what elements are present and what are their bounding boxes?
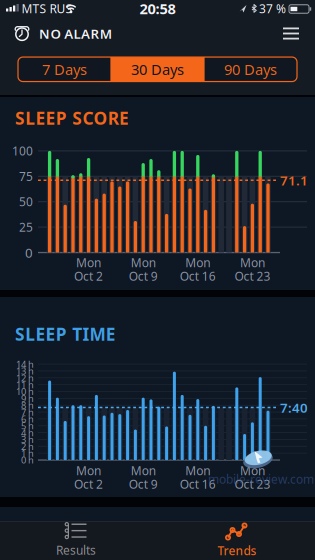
staticText: 14 h xyxy=(16,358,34,370)
staticText: NO ALARM xyxy=(39,25,112,42)
button[interactable]: 90 Days xyxy=(204,57,297,81)
staticText: 13 h xyxy=(16,365,34,377)
staticText: Oct 16 xyxy=(180,476,216,492)
staticText: 0 xyxy=(25,244,33,261)
staticText: 5 h xyxy=(21,420,34,432)
button[interactable]: 30 Days xyxy=(111,57,204,81)
staticText: 90 Days xyxy=(224,60,277,79)
staticText: 75 xyxy=(19,168,33,184)
staticText: 12 h xyxy=(16,372,34,384)
staticText: 4 h xyxy=(21,426,34,439)
staticText: Mon xyxy=(185,462,210,478)
staticText: 7 Days xyxy=(42,60,87,79)
staticText: Mon xyxy=(76,462,101,478)
staticText: Mon xyxy=(131,254,156,270)
staticText: Oct 2 xyxy=(74,476,103,492)
staticText: 10 h xyxy=(16,385,34,398)
staticText: Oct 9 xyxy=(129,476,158,492)
staticText: 20:58 xyxy=(139,0,175,18)
staticText: Oct 23 xyxy=(234,476,270,492)
staticText: Mon xyxy=(76,254,101,270)
staticText: 30 Days xyxy=(131,60,184,79)
button[interactable]: Menu xyxy=(275,19,307,47)
staticText: 8 h xyxy=(21,399,34,411)
staticText: Mon xyxy=(240,462,265,478)
staticText: Mon xyxy=(240,254,265,270)
staticText: SLEEP SCORE xyxy=(15,106,129,129)
staticText: SLEEP TIME xyxy=(15,322,116,345)
staticText: Mon xyxy=(131,462,156,478)
staticText: 0 h xyxy=(21,454,34,466)
staticText: 11 h xyxy=(16,378,34,391)
staticText: 37 % xyxy=(259,0,286,16)
staticText: 9 h xyxy=(21,392,34,405)
staticText: Trends xyxy=(217,542,256,558)
staticText: Results xyxy=(56,542,96,558)
staticText: 3 h xyxy=(21,433,34,446)
staticText: 1 h xyxy=(21,447,34,459)
button[interactable]: 7 Days xyxy=(18,57,111,81)
staticText: 25 xyxy=(19,219,33,235)
button[interactable]: Results xyxy=(6,521,146,559)
staticText: mobile-review.com xyxy=(208,471,314,487)
staticText: 7 h xyxy=(21,406,34,418)
button[interactable]: Trends xyxy=(167,521,307,559)
staticText: 50 xyxy=(19,194,33,210)
staticText: Oct 16 xyxy=(180,268,216,284)
staticText: Oct 9 xyxy=(129,268,158,284)
staticText: 71.1 xyxy=(280,171,308,189)
staticText: 100 xyxy=(12,143,33,159)
staticText: Oct 23 xyxy=(234,268,270,284)
staticText: Oct 2 xyxy=(74,268,103,284)
staticText: 6 h xyxy=(21,413,34,425)
staticText: Mon xyxy=(185,254,210,270)
button[interactable]: Alarm xyxy=(14,18,144,48)
staticText: 2 h xyxy=(21,440,34,452)
staticText: 7:40 xyxy=(280,399,308,416)
staticText: MTS RUS xyxy=(21,0,72,16)
